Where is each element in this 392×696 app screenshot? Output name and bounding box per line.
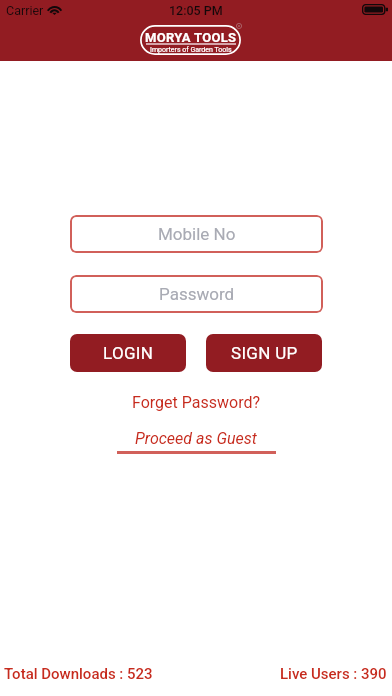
staticText: Password [159,284,235,304]
button[interactable]: Password [70,275,323,313]
staticText: Total Downloads : 523 [4,665,153,683]
other: Morya Tools logo [140,25,241,55]
button[interactable]: SIGN UP [206,334,322,372]
staticText: Live Users : 390 [280,665,387,683]
staticText: 12:05 PM [169,3,223,18]
staticText: LOGIN [103,343,154,363]
button[interactable]: Mobile No [70,215,323,253]
staticText: Forget Password? [132,393,260,412]
other: Battery [362,4,388,15]
staticText: Mobile No [158,224,236,244]
button[interactable]: LOGIN [70,334,186,372]
button[interactable]: Forget Password? [0,391,392,413]
button[interactable]: Proceed as Guest [0,429,392,454]
staticText: Carrier [6,3,44,18]
other: Wi-Fi [48,6,61,15]
staticText: Importers of Garden Tools [150,46,232,54]
staticText: MORYA TOOLS [145,30,237,45]
staticText: Proceed as Guest [135,429,257,448]
staticText: SIGN UP [231,343,298,363]
